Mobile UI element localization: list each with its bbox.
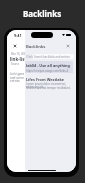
staticText: https://recipes.usage.com/links-4 — [26, 69, 68, 73]
staticText: Backlinks — [26, 44, 46, 50]
staticText: Sed do eiusmod tempor incididunt. — [26, 86, 71, 90]
staticText: link-list — [10, 56, 27, 62]
button[interactable]: Search backlinks and entries — [33, 54, 74, 59]
button[interactable]: Close — [12, 43, 18, 49]
staticText: Mar 16, 2024 — [11, 52, 27, 56]
staticText: Backlinks — [23, 8, 62, 19]
staticText: Search backlinks and entries — [34, 55, 70, 59]
staticText: lab04 - Use all anything — [26, 63, 70, 68]
button[interactable]: Close panel — [65, 43, 71, 49]
staticText: Lifes From Westlake — [26, 77, 65, 82]
staticText: Link types and some entries — [10, 72, 28, 83]
staticText: Source — [11, 62, 20, 66]
staticText: 2 links — [26, 55, 35, 59]
staticText: Lorem ipsum dolor sit amet est, adipisci… — [26, 82, 76, 89]
button[interactable]: lab04 - Use all anything — [25, 61, 73, 73]
staticText: 9:41 — [14, 33, 22, 38]
